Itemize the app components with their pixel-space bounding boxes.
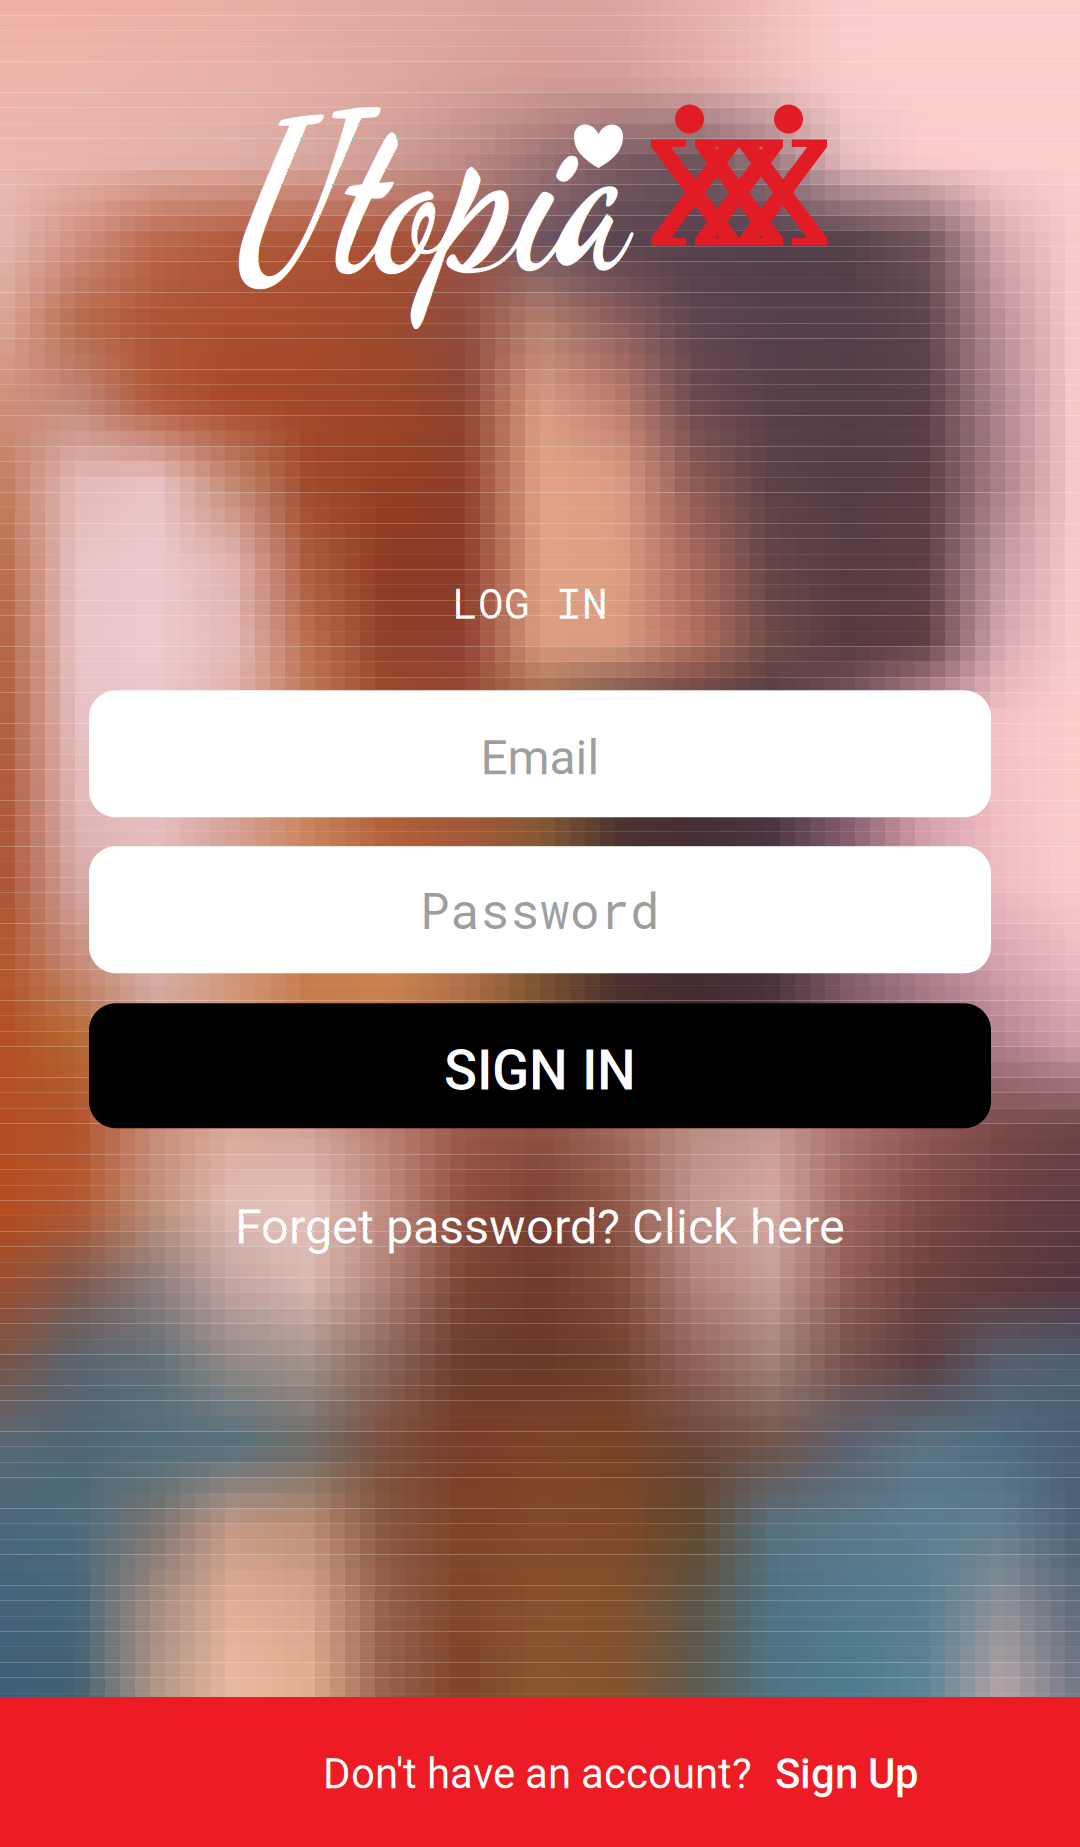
staticText: Password <box>420 877 660 942</box>
staticText: Don't have an account? <box>323 1749 752 1799</box>
staticText: Forget password? Click here <box>235 1198 845 1255</box>
button[interactable]: Forget password? Click here <box>235 1198 845 1255</box>
staticText: Sign Up <box>775 1749 919 1799</box>
staticText: SIGN IN <box>444 1039 636 1103</box>
button[interactable]: SIGN IN <box>0 1003 1080 1128</box>
staticText: Utopia <box>240 61 632 340</box>
button[interactable]: Don't have an account? <box>0 1697 1080 1847</box>
staticText: LOG IN <box>452 574 608 630</box>
staticText: Email <box>480 730 599 786</box>
